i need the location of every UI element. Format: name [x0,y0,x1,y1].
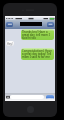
button[interactable]: Camera [6,95,10,99]
button[interactable]: Hey! [6,41,14,46]
staticText: Send [46,96,54,99]
button[interactable]: Congratulations! Have a great day today!… [21,48,54,60]
staticText: Hey! [7,42,14,46]
button[interactable]: Home [27,106,34,113]
button[interactable]: Back [6,22,13,27]
staticText: Congratulations! Have a great day today!… [22,49,53,60]
button[interactable]: Thanks bro! Have a great day, tell mom I… [21,29,54,40]
button[interactable]: Send [46,95,54,99]
button[interactable] [10,95,44,99]
staticText: Thanks bro! Have a great day, tell mom I… [22,30,53,40]
button[interactable]: Contact info [47,22,54,27]
